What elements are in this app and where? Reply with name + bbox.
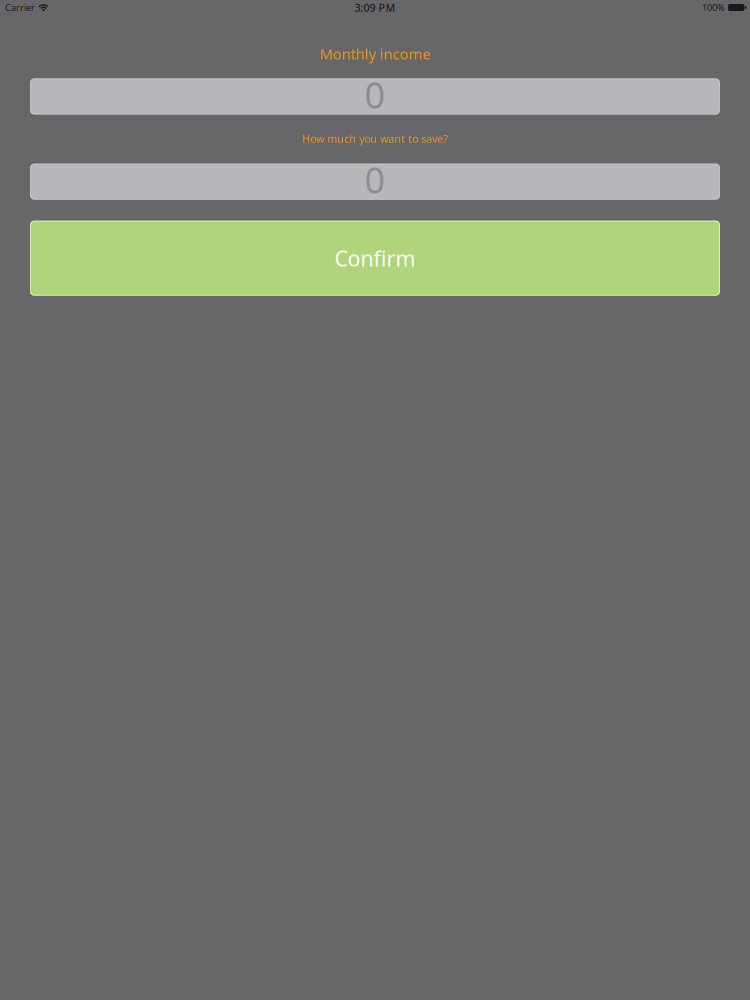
staticText: 0 bbox=[364, 156, 385, 203]
staticText: 0 bbox=[364, 71, 385, 118]
staticText: Monthly income bbox=[319, 44, 430, 63]
button[interactable]: Confirm bbox=[30, 221, 720, 296]
staticText: Carrier bbox=[5, 1, 35, 14]
staticText: Confirm bbox=[334, 244, 415, 272]
staticText: 100% bbox=[702, 1, 725, 14]
staticText: How much you want to save? bbox=[302, 131, 448, 146]
staticText: 3:09 PM bbox=[355, 0, 396, 15]
button[interactable]: How much you want to save? bbox=[30, 164, 720, 200]
button[interactable]: Monthly income bbox=[30, 78, 720, 114]
